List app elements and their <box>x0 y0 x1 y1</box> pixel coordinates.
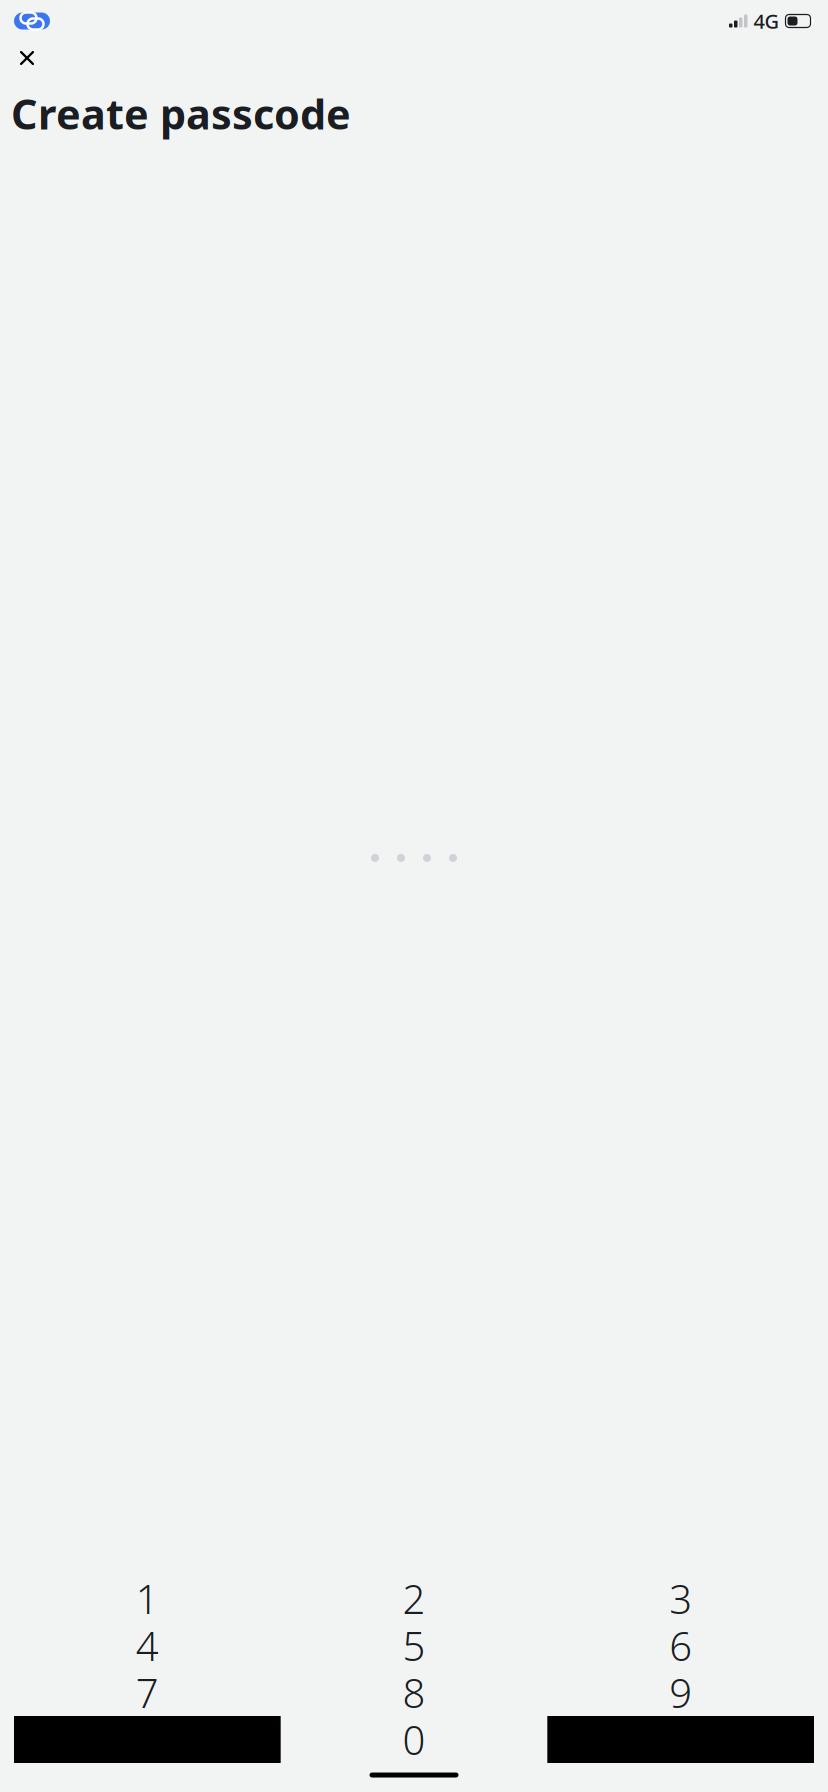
staticText: 4G <box>753 8 779 34</box>
staticText: 6 <box>669 1619 692 1672</box>
staticText: 8 <box>402 1666 425 1719</box>
staticText: 5 <box>402 1619 425 1672</box>
button[interactable]: 2 <box>281 1575 547 1622</box>
staticText: Create passcode <box>11 86 351 141</box>
staticText: 4 <box>136 1619 159 1672</box>
button[interactable]: Close <box>9 42 45 74</box>
button[interactable]: 6 <box>547 1622 814 1669</box>
button[interactable]: 0 <box>281 1716 547 1763</box>
button[interactable]: 7 <box>14 1669 281 1716</box>
button[interactable]: 4 <box>14 1622 281 1669</box>
staticText: 3 <box>669 1572 692 1625</box>
button[interactable]: 5 <box>281 1622 547 1669</box>
staticText: 2 <box>402 1572 425 1625</box>
button[interactable]: 1 <box>14 1575 281 1622</box>
staticText: 7 <box>136 1666 159 1719</box>
staticText: 0 <box>402 1713 425 1766</box>
button[interactable]: 9 <box>547 1669 814 1716</box>
button[interactable]: 8 <box>281 1669 547 1716</box>
staticText: 9 <box>669 1666 692 1719</box>
staticText: 1 <box>136 1572 159 1625</box>
button[interactable]: 3 <box>547 1575 814 1622</box>
